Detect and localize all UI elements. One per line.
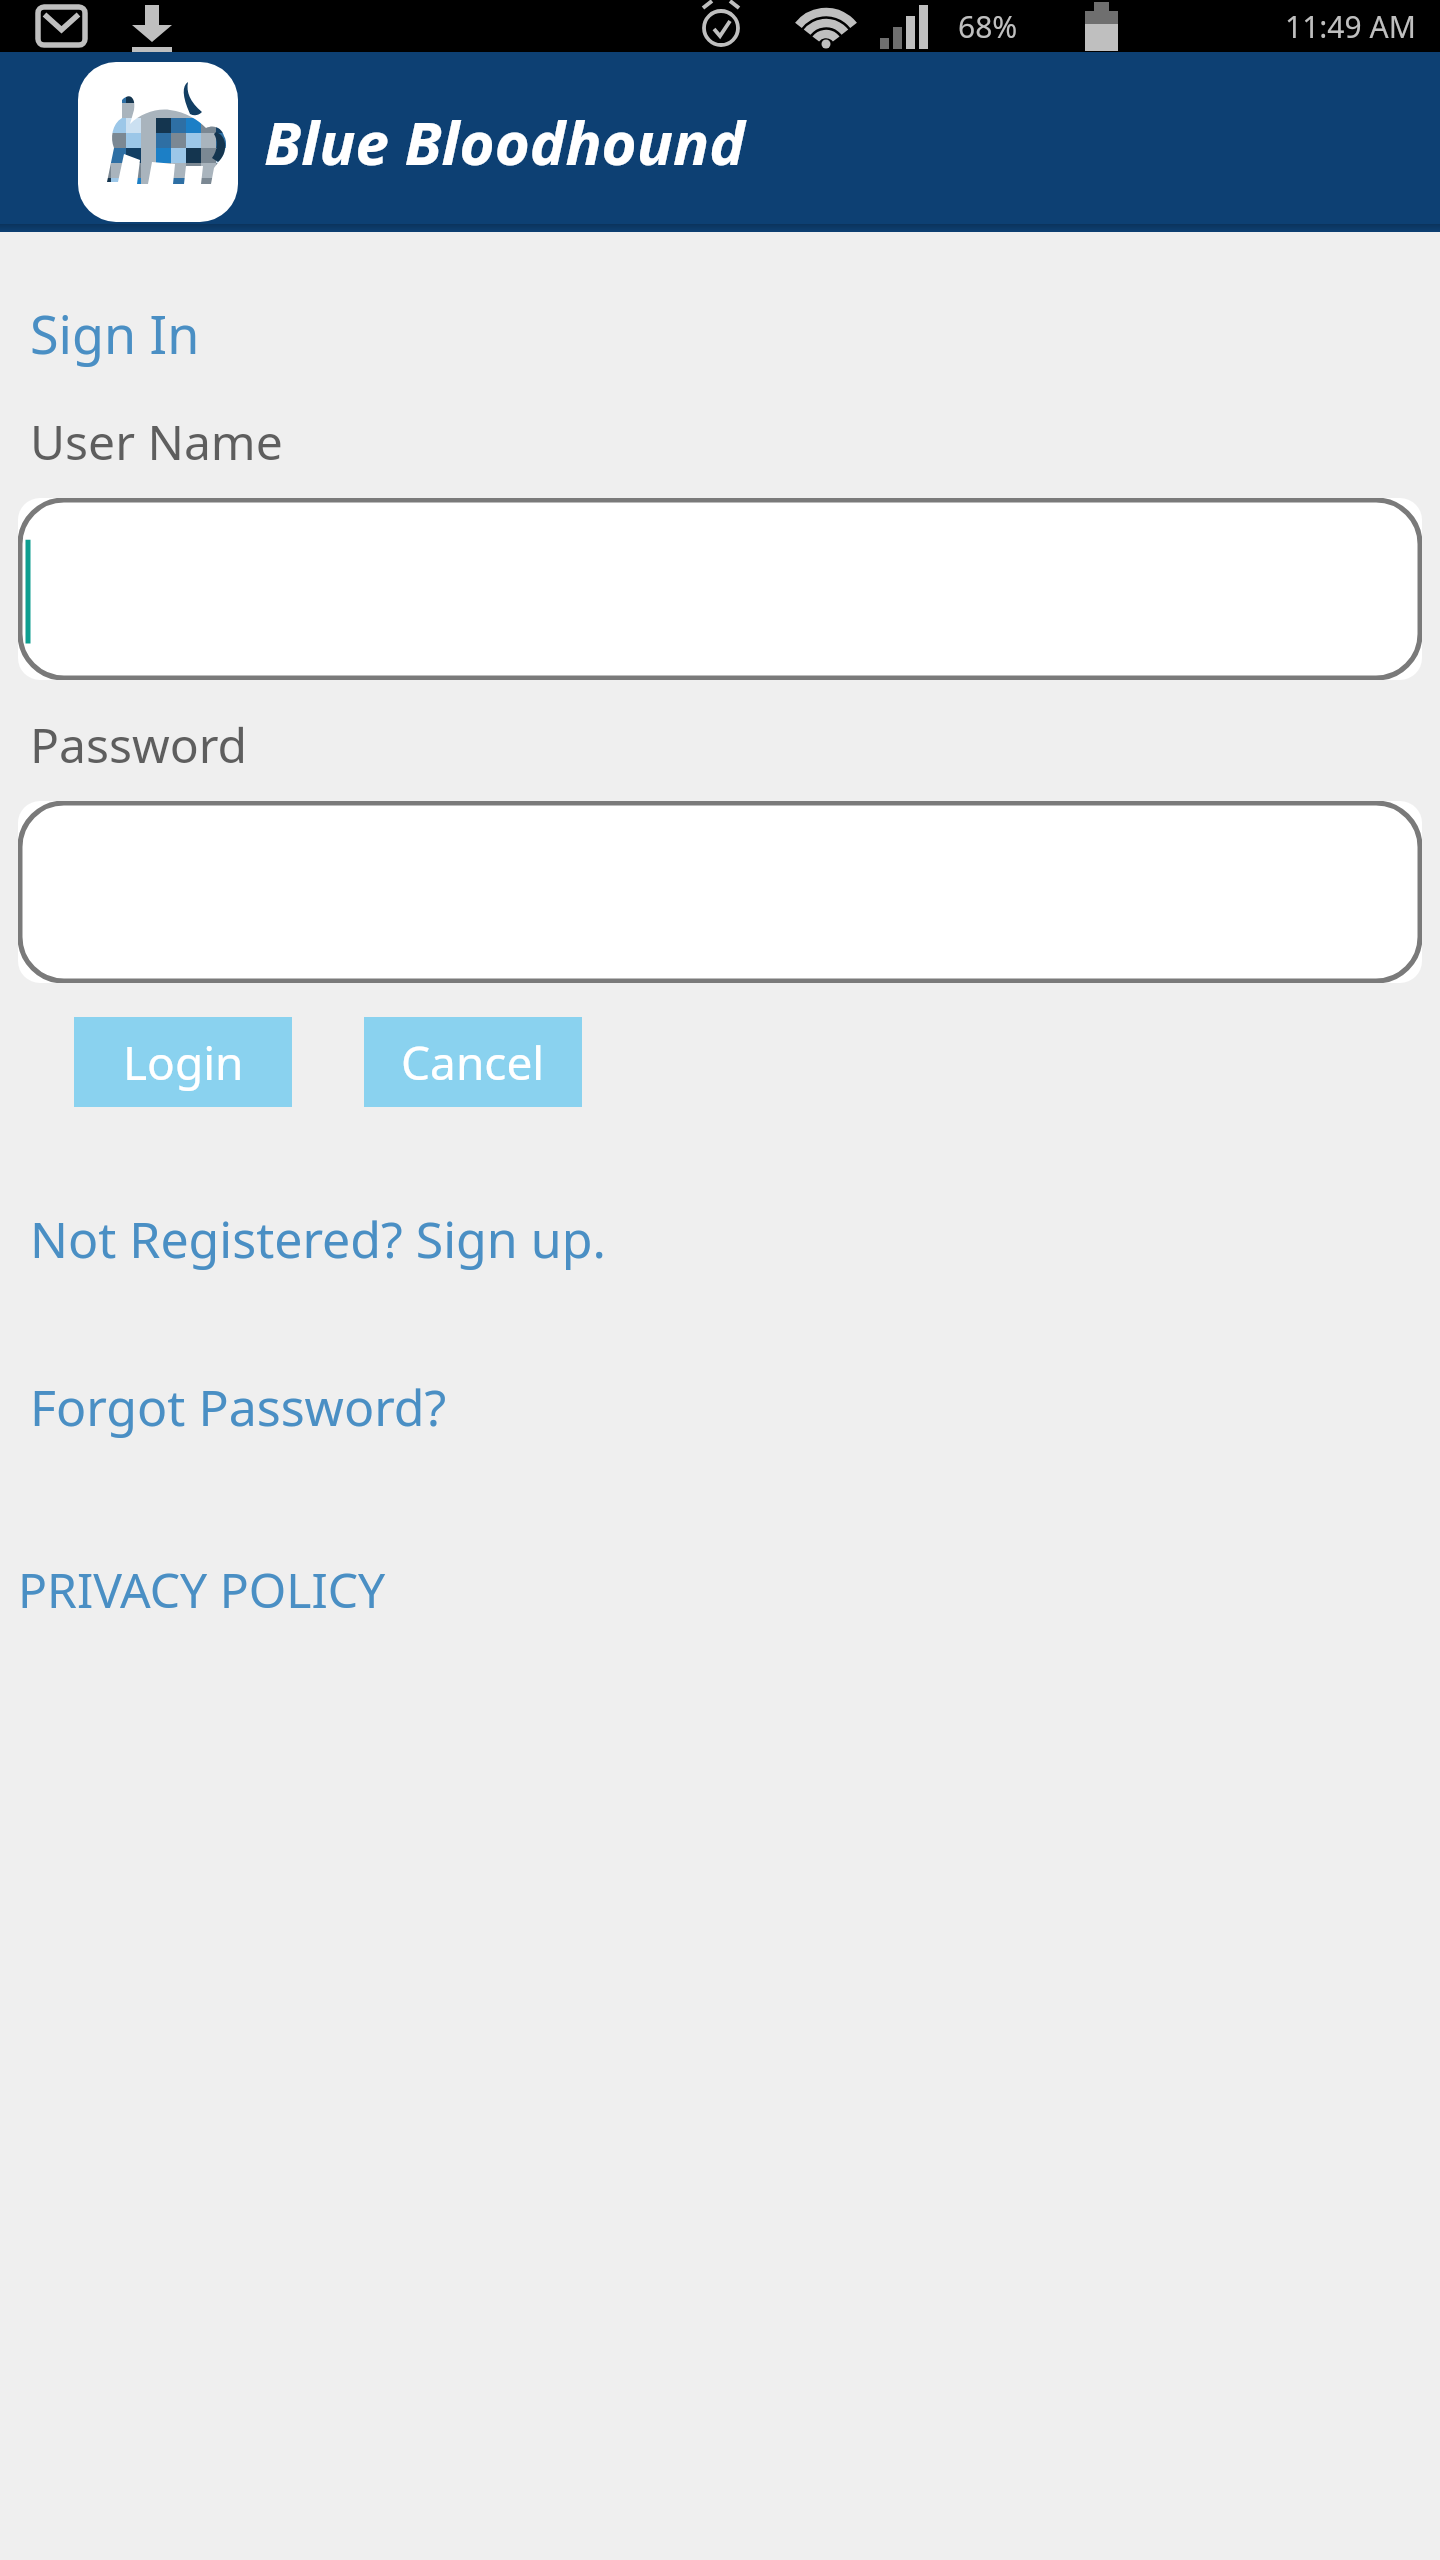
staticText: 68% (958, 6, 1018, 47)
button[interactable]: Cancel (364, 1017, 582, 1107)
button[interactable] (18, 498, 1422, 680)
staticText: Password (30, 712, 248, 777)
staticText: User Name (30, 409, 283, 474)
staticText: Not Registered? Sign up. (30, 1205, 606, 1273)
button[interactable] (18, 801, 1422, 983)
staticText: Sign In (30, 298, 200, 369)
staticText: Login (123, 1031, 244, 1094)
staticText: 11:49 AM (1285, 6, 1416, 47)
staticText: Blue Bloodhound (264, 101, 745, 183)
button[interactable]: Login (74, 1017, 292, 1107)
button[interactable]: Blue Bloodhound logo (78, 62, 238, 222)
button[interactable]: Forgot Password? (18, 1367, 459, 1447)
button[interactable]: PRIVACY POLICY (18, 1551, 386, 1628)
staticText: PRIVACY POLICY (18, 1557, 386, 1622)
staticText: Cancel (401, 1031, 545, 1094)
button[interactable]: Sign In (18, 294, 212, 373)
staticText: Forgot Password? (30, 1373, 447, 1441)
button[interactable]: Not Registered? Sign up. (18, 1199, 618, 1279)
